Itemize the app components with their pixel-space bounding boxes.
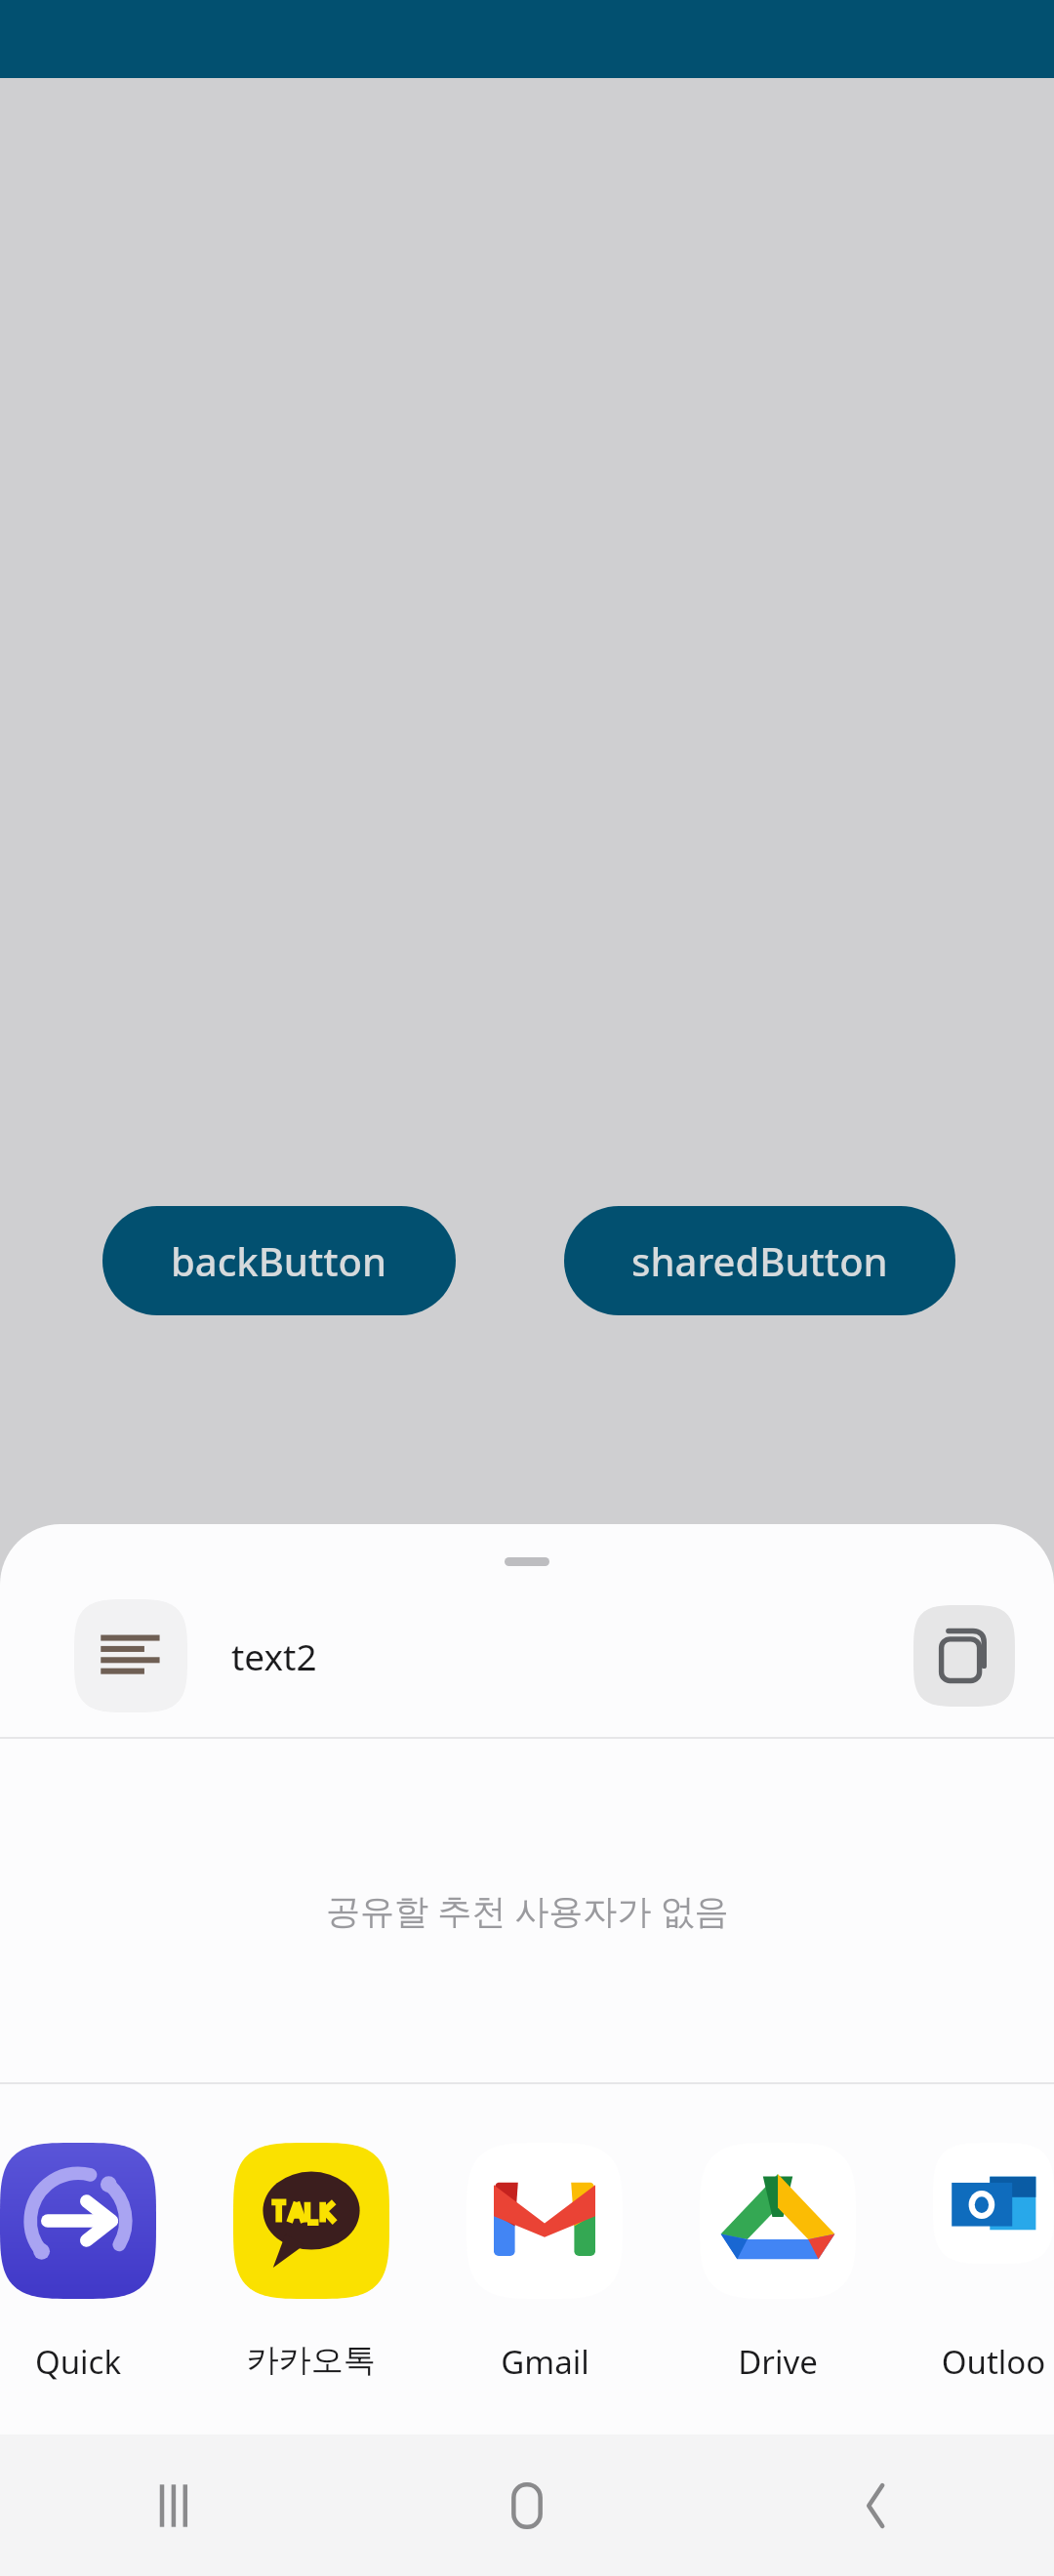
button[interactable]: Home — [351, 2435, 703, 2576]
staticText: 카카오톡 — [247, 2340, 376, 2381]
staticText: sharedButton — [631, 1234, 888, 1287]
button[interactable]: Outlook — [933, 2084, 1054, 2435]
button[interactable]: sharedButton — [564, 1206, 955, 1315]
staticText: backButton — [171, 1234, 387, 1287]
button[interactable]: Recents — [0, 2435, 351, 2576]
button[interactable]: 카카오톡 — [233, 2084, 389, 2435]
staticText: Quick Share — [0, 2340, 156, 2384]
button[interactable]: Back — [703, 2435, 1054, 2576]
button[interactable]: Text options — [74, 1599, 187, 1712]
button[interactable]: Copy — [913, 1605, 1015, 1707]
staticText: 공유할 추천 사용자가 없음 — [326, 1887, 729, 1934]
button[interactable]: Drive — [700, 2084, 856, 2435]
button[interactable]: backButton — [102, 1206, 456, 1315]
staticText: Drive — [738, 2340, 818, 2384]
button[interactable]: Quick Share — [0, 2084, 156, 2435]
staticText: Gmail — [501, 2340, 589, 2384]
staticText: text2 — [231, 1631, 317, 1680]
staticText: Outlook — [933, 2340, 1054, 2384]
button[interactable]: Gmail — [466, 2084, 623, 2435]
